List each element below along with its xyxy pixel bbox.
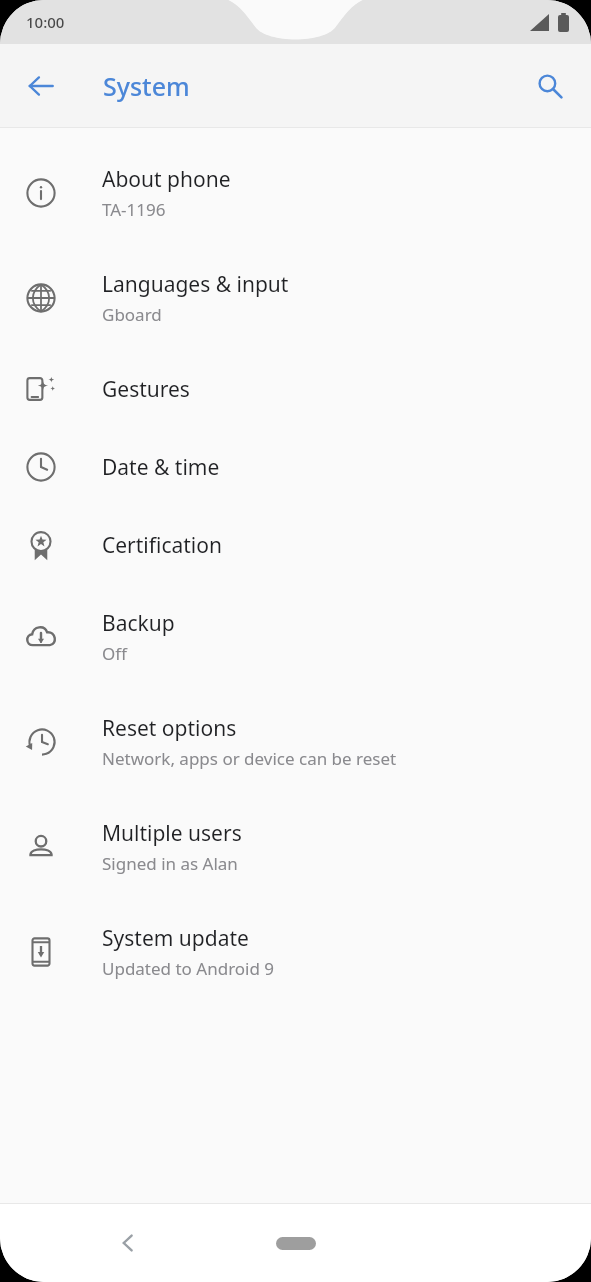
staticText: Multiple users [102,819,242,848]
staticText: Gboard [102,303,162,326]
staticText: About phone [102,165,231,194]
button[interactable]: Languages & input [0,245,591,350]
staticText: System [103,69,190,103]
staticText: TA-1196 [102,198,166,221]
button[interactable]: Certification [0,506,591,584]
staticText: Gestures [102,375,190,404]
button[interactable]: Multiple users [0,794,591,899]
button[interactable]: Search [525,61,575,111]
staticText: Off [102,642,127,665]
button[interactable]: System update [0,899,591,1004]
button[interactable]: Home [268,1226,324,1260]
staticText: Languages & input [102,270,289,299]
button[interactable]: Gestures [0,350,591,428]
staticText: Certification [102,531,222,560]
staticText: Signed in as Alan [102,852,238,875]
staticText: Date & time [102,453,220,482]
staticText: Backup [102,609,175,638]
button[interactable]: Date & time [0,428,591,506]
staticText: Reset options [102,714,237,743]
staticText: Updated to Android 9 [102,957,275,980]
staticText: System update [102,924,249,953]
staticText: 10:00 [26,12,65,32]
button[interactable]: Back [16,61,66,111]
button[interactable]: About phone [0,140,591,245]
button[interactable]: Backup [0,584,591,689]
staticText: Network, apps or device can be reset [102,747,397,770]
button[interactable]: Back [104,1218,154,1268]
button[interactable]: Reset options [0,689,591,794]
